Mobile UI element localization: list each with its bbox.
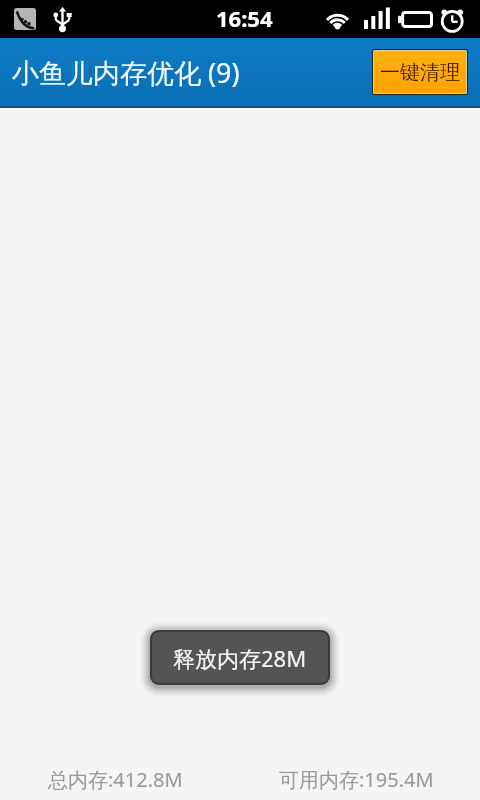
staticText: 总内存:412.8M bbox=[48, 766, 183, 793]
other: Alarm set bbox=[440, 6, 466, 32]
other: Signal strength bbox=[364, 7, 390, 29]
staticText: 16:54 bbox=[216, 3, 273, 33]
staticText: 释放内存28M bbox=[173, 643, 307, 673]
staticText: 一键清理 bbox=[380, 60, 460, 85]
other: SD card bbox=[14, 8, 36, 30]
staticText: 小鱼儿内存优化 (9) bbox=[12, 54, 240, 91]
other: Wi-Fi bbox=[323, 7, 352, 31]
staticText: 可用内存:195.4M bbox=[279, 766, 434, 793]
other: Battery bbox=[398, 11, 433, 28]
other: USB connected bbox=[52, 7, 73, 32]
button[interactable]: 一键清理 bbox=[372, 49, 468, 95]
